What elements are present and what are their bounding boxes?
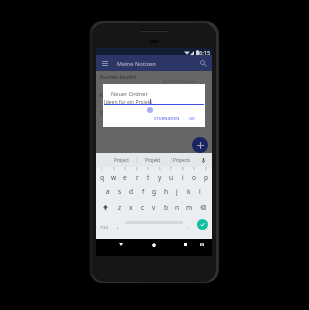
button[interactable]: Sport [96,109,212,127]
staticText: Kuchen kaufen [100,73,137,80]
staticText: b [164,203,169,212]
staticText: 29.05.2018 9:02:11 pm [96,98,196,102]
staticText: 6 [159,167,161,171]
button[interactable]: d [125,183,137,199]
staticText: k [187,187,191,196]
button[interactable]: x [125,199,137,215]
staticText: w [111,173,117,182]
button[interactable]: Projekt [139,153,167,167]
staticText: q [100,173,105,182]
button[interactable]: Kuchen kaufen [96,73,212,91]
staticText: ?123 [100,225,108,230]
button[interactable]: t [142,169,154,185]
button[interactable]: v [148,199,160,215]
button[interactable]: y [154,169,166,185]
button[interactable]: n [171,199,183,215]
button[interactable]: STORNIEREN [152,114,182,123]
staticText: h [164,187,169,196]
button[interactable]: o [188,169,200,185]
button[interactable]: e [119,169,131,185]
button[interactable]: b [160,199,172,215]
button[interactable]: q [96,169,108,185]
staticText: r [136,173,139,182]
button[interactable]: Tastatur wechseln [195,238,209,251]
staticText: 28.05.2018 7:30:00 am [96,116,196,120]
staticText: 7 [170,167,172,171]
staticText: p [204,173,209,182]
staticText: 8 [182,167,184,171]
staticText: m [186,203,193,212]
staticText: 1 [101,167,103,171]
button[interactable]: i [177,169,189,185]
staticText: 3 [124,167,126,171]
button[interactable]: k [183,183,195,199]
button[interactable]: g [148,183,160,199]
staticText: u [169,173,174,182]
staticText: n [175,203,180,212]
button[interactable]: Neue Notiz hinzufügen [192,137,208,153]
button[interactable]: Umschalttaste [99,199,111,215]
staticText: c [141,203,145,212]
button[interactable]: c [137,199,149,215]
button[interactable]: s [114,183,126,199]
button[interactable]: Übersicht [176,238,194,251]
button[interactable]: Zurück [112,238,130,251]
staticText: v [152,203,156,212]
button[interactable]: w [108,169,120,185]
button[interactable]: OK [187,114,197,123]
staticText: f [142,187,145,196]
button[interactable]: p [200,169,212,185]
staticText: 6:15 [199,49,211,56]
staticText: STORNIEREN [154,116,180,121]
staticText: Projects [173,157,191,163]
staticText: . [188,223,190,231]
staticText: , [117,223,119,231]
staticText: o [192,173,196,182]
staticText: e [123,173,127,182]
button[interactable]: z [114,199,126,215]
button[interactable]: , [112,215,123,239]
staticText: OK [189,116,195,121]
button[interactable]: Kinokarten [96,91,212,109]
staticText: j [176,187,178,196]
staticText: x [129,203,133,212]
staticText: g [152,187,157,196]
button[interactable]: Spracheingabe [197,153,209,167]
button[interactable]: Rücktaste [197,199,209,215]
staticText: a [106,187,110,196]
staticText: 5 [147,167,149,171]
button[interactable]: Suchen [196,55,211,71]
button[interactable]: Navigationsmenü [98,55,112,71]
button[interactable]: Eingabe [197,219,208,230]
button[interactable]: Projects [168,153,196,167]
button[interactable]: Startbildschirm [145,238,163,251]
staticText: Sport [100,109,114,116]
staticText: 2 [113,167,115,171]
staticText: Neuer Ordner [111,90,148,98]
button[interactable]: u [165,169,177,185]
staticText: d [129,187,134,196]
staticText: Projekt [145,157,161,163]
button[interactable]: m [183,199,195,215]
button[interactable]: r [131,169,143,185]
button[interactable]: f [137,183,149,199]
staticText: i [182,173,184,182]
button[interactable]: . [183,215,194,239]
button[interactable]: ?123 [97,215,111,239]
staticText: l [199,187,201,196]
staticText: s [118,187,122,196]
staticText: Project [114,157,130,163]
staticText: 0 [205,167,207,171]
button[interactable]: a [102,183,114,199]
button[interactable]: h [160,183,172,199]
button[interactable]: l [194,183,206,199]
button[interactable]: Project [108,153,136,167]
staticText: Meine Notizen [117,60,156,68]
staticText: t [147,173,150,182]
staticText: 4 [136,167,138,171]
staticText: y [158,173,162,182]
staticText: Kinokarten [100,91,127,98]
staticText: z [118,203,122,212]
button[interactable]: j [171,183,183,199]
